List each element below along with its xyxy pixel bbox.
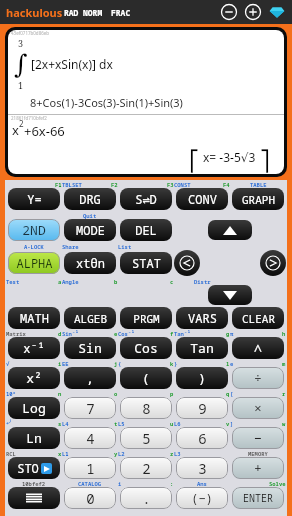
staticText: v — [226, 420, 230, 427]
staticText: RCL — [6, 450, 16, 457]
staticText: 9 — [198, 399, 207, 418]
button[interactable]: ENTER — [232, 487, 284, 509]
button[interactable]: (−) — [176, 487, 228, 509]
button[interactable]: ) — [176, 367, 228, 389]
button[interactable]: Right — [260, 250, 286, 276]
staticText: Test — [6, 278, 20, 285]
staticText: s — [58, 420, 62, 427]
button[interactable]: Premium — [268, 3, 286, 21]
button[interactable]: Cos — [120, 337, 172, 359]
staticText: 10ˣ — [6, 390, 16, 397]
button[interactable]: STAT — [120, 252, 172, 274]
button[interactable]: Ln — [8, 427, 60, 449]
staticText: x= -3-5√3 — [203, 149, 256, 165]
button[interactable]: Zoom in — [244, 3, 262, 21]
button[interactable]: CONV — [176, 188, 228, 210]
button[interactable]: 3 — [176, 457, 228, 479]
staticText: 6 — [198, 429, 207, 448]
staticText: u — [170, 420, 174, 427]
button[interactable]: PRGM — [120, 307, 172, 329]
button[interactable]: ÷ — [232, 367, 284, 389]
staticText: hackulous — [6, 5, 63, 20]
button[interactable]: 5 — [120, 427, 172, 449]
button[interactable]: . — [120, 487, 172, 509]
button[interactable]: − — [232, 427, 284, 449]
button[interactable]: 7 — [64, 397, 116, 419]
button[interactable]: × — [232, 397, 284, 419]
button[interactable]: + — [232, 457, 284, 479]
staticText: z — [170, 450, 174, 457]
button[interactable]: 4 — [64, 427, 116, 449]
button[interactable]: ∧ — [232, 337, 284, 359]
button[interactable]: Tan — [176, 337, 228, 359]
staticText: VARS — [188, 310, 217, 326]
button[interactable]: Y= — [8, 188, 60, 210]
button[interactable]: x⁻¹ — [8, 337, 60, 359]
button[interactable]: CLEAR — [232, 307, 284, 329]
button[interactable]: Menu — [8, 487, 60, 509]
button[interactable]: ( — [120, 367, 172, 389]
staticText: NORM — [83, 7, 103, 18]
staticText: 2 — [142, 459, 151, 478]
button[interactable]: 9 — [176, 397, 228, 419]
button[interactable]: 1 — [64, 457, 116, 479]
button[interactable]: 2 — [120, 457, 172, 479]
staticText: q — [226, 390, 230, 397]
button[interactable]: Sin — [64, 337, 116, 359]
staticText: Sin — [78, 339, 102, 357]
button[interactable]: Left — [174, 250, 200, 276]
staticText: ÷ — [254, 369, 262, 387]
button[interactable]: 6 — [176, 427, 228, 449]
button[interactable]: 2ND — [8, 219, 60, 241]
button[interactable]: 0 — [64, 487, 116, 509]
staticText: [2x+xSin(x)] dx — [31, 56, 113, 72]
button[interactable]: STO — [8, 457, 60, 479]
staticText: ALPHA — [16, 255, 53, 271]
button[interactable]: 8 — [120, 397, 172, 419]
button[interactable]: GRAPH — [232, 188, 284, 210]
button[interactable]: S⇌D — [120, 188, 172, 210]
staticText: L1 — [62, 450, 69, 457]
button[interactable]: ALGEB — [64, 307, 116, 329]
staticText: CATALOG — [78, 480, 102, 487]
staticText: d — [58, 330, 62, 337]
button[interactable]: Log — [8, 397, 60, 419]
button[interactable]: MODE — [64, 219, 116, 241]
staticText: F2 — [111, 181, 118, 188]
staticText: 21861fd710bfef2 — [11, 115, 47, 121]
staticText: L3 — [174, 450, 181, 457]
staticText: x — [12, 121, 19, 139]
staticText: Solve — [269, 480, 286, 487]
button[interactable]: Up — [208, 220, 252, 240]
staticText: c — [170, 278, 174, 285]
button[interactable]: Down — [208, 285, 252, 305]
staticText: 3 — [198, 459, 207, 478]
staticText: 1 — [86, 459, 95, 478]
button[interactable]: 43ef0717b0d86eb — [8, 30, 284, 174]
staticText: DRG — [79, 191, 101, 207]
staticText: { — [118, 360, 122, 367]
staticText: l — [226, 360, 230, 367]
staticText: : — [170, 480, 174, 487]
button[interactable]: MATH — [8, 307, 60, 329]
button[interactable]: , — [64, 367, 116, 389]
button[interactable]: x² — [8, 367, 60, 389]
button[interactable]: Zoom out — [220, 3, 238, 21]
button[interactable]: ALPHA — [8, 252, 60, 274]
staticText: i — [118, 480, 122, 487]
staticText: 7 — [86, 399, 95, 418]
staticText: ( — [142, 369, 150, 387]
staticText: PRGM — [133, 311, 160, 326]
staticText: Y= — [27, 191, 42, 207]
staticText: xtθn — [76, 255, 105, 271]
staticText: r — [282, 390, 286, 397]
button[interactable]: xtθn — [64, 252, 116, 274]
staticText: Tan — [190, 339, 214, 357]
button[interactable]: DRG — [64, 188, 116, 210]
staticText: m — [282, 360, 286, 367]
button[interactable]: VARS — [176, 307, 228, 329]
staticText: n — [58, 390, 62, 397]
button[interactable]: DEL — [120, 219, 172, 241]
staticText: RAD — [64, 7, 79, 18]
staticText: 2ND — [22, 221, 46, 239]
